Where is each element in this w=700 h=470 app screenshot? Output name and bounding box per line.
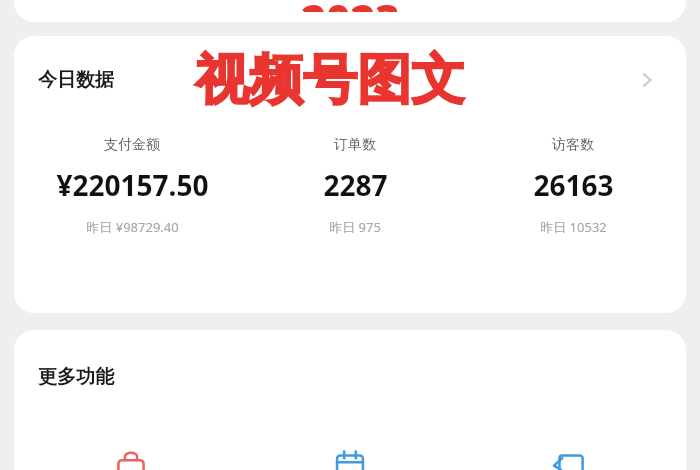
staticText: ¥220157.50 (56, 166, 209, 204)
staticText: 2023 (301, 0, 400, 12)
staticText: 26163 (533, 166, 614, 204)
button[interactable]: 笔记 (459, 448, 678, 470)
staticText: 2287 (323, 166, 388, 204)
staticText: 订单数 (334, 136, 376, 154)
button[interactable]: 商品 (22, 448, 240, 470)
staticText: 支付金额 (104, 136, 160, 154)
staticText: 昨日 10532 (540, 218, 607, 236)
button[interactable]: 日历 (240, 448, 459, 470)
button[interactable]: 2023 (14, 0, 686, 22)
button[interactable]: 更多功能 (14, 330, 686, 470)
staticText: 昨日 975 (329, 218, 381, 236)
staticText: 视频号图文 (195, 46, 465, 114)
staticText: 访客数 (552, 136, 594, 154)
staticText: 昨日 ¥98729.40 (86, 218, 179, 236)
staticText: 更多功能 (38, 365, 114, 389)
button[interactable]: 今日数据 (14, 36, 686, 313)
button[interactable]: 查看更多今日数据 (632, 65, 662, 95)
staticText: 今日数据 (38, 68, 114, 92)
